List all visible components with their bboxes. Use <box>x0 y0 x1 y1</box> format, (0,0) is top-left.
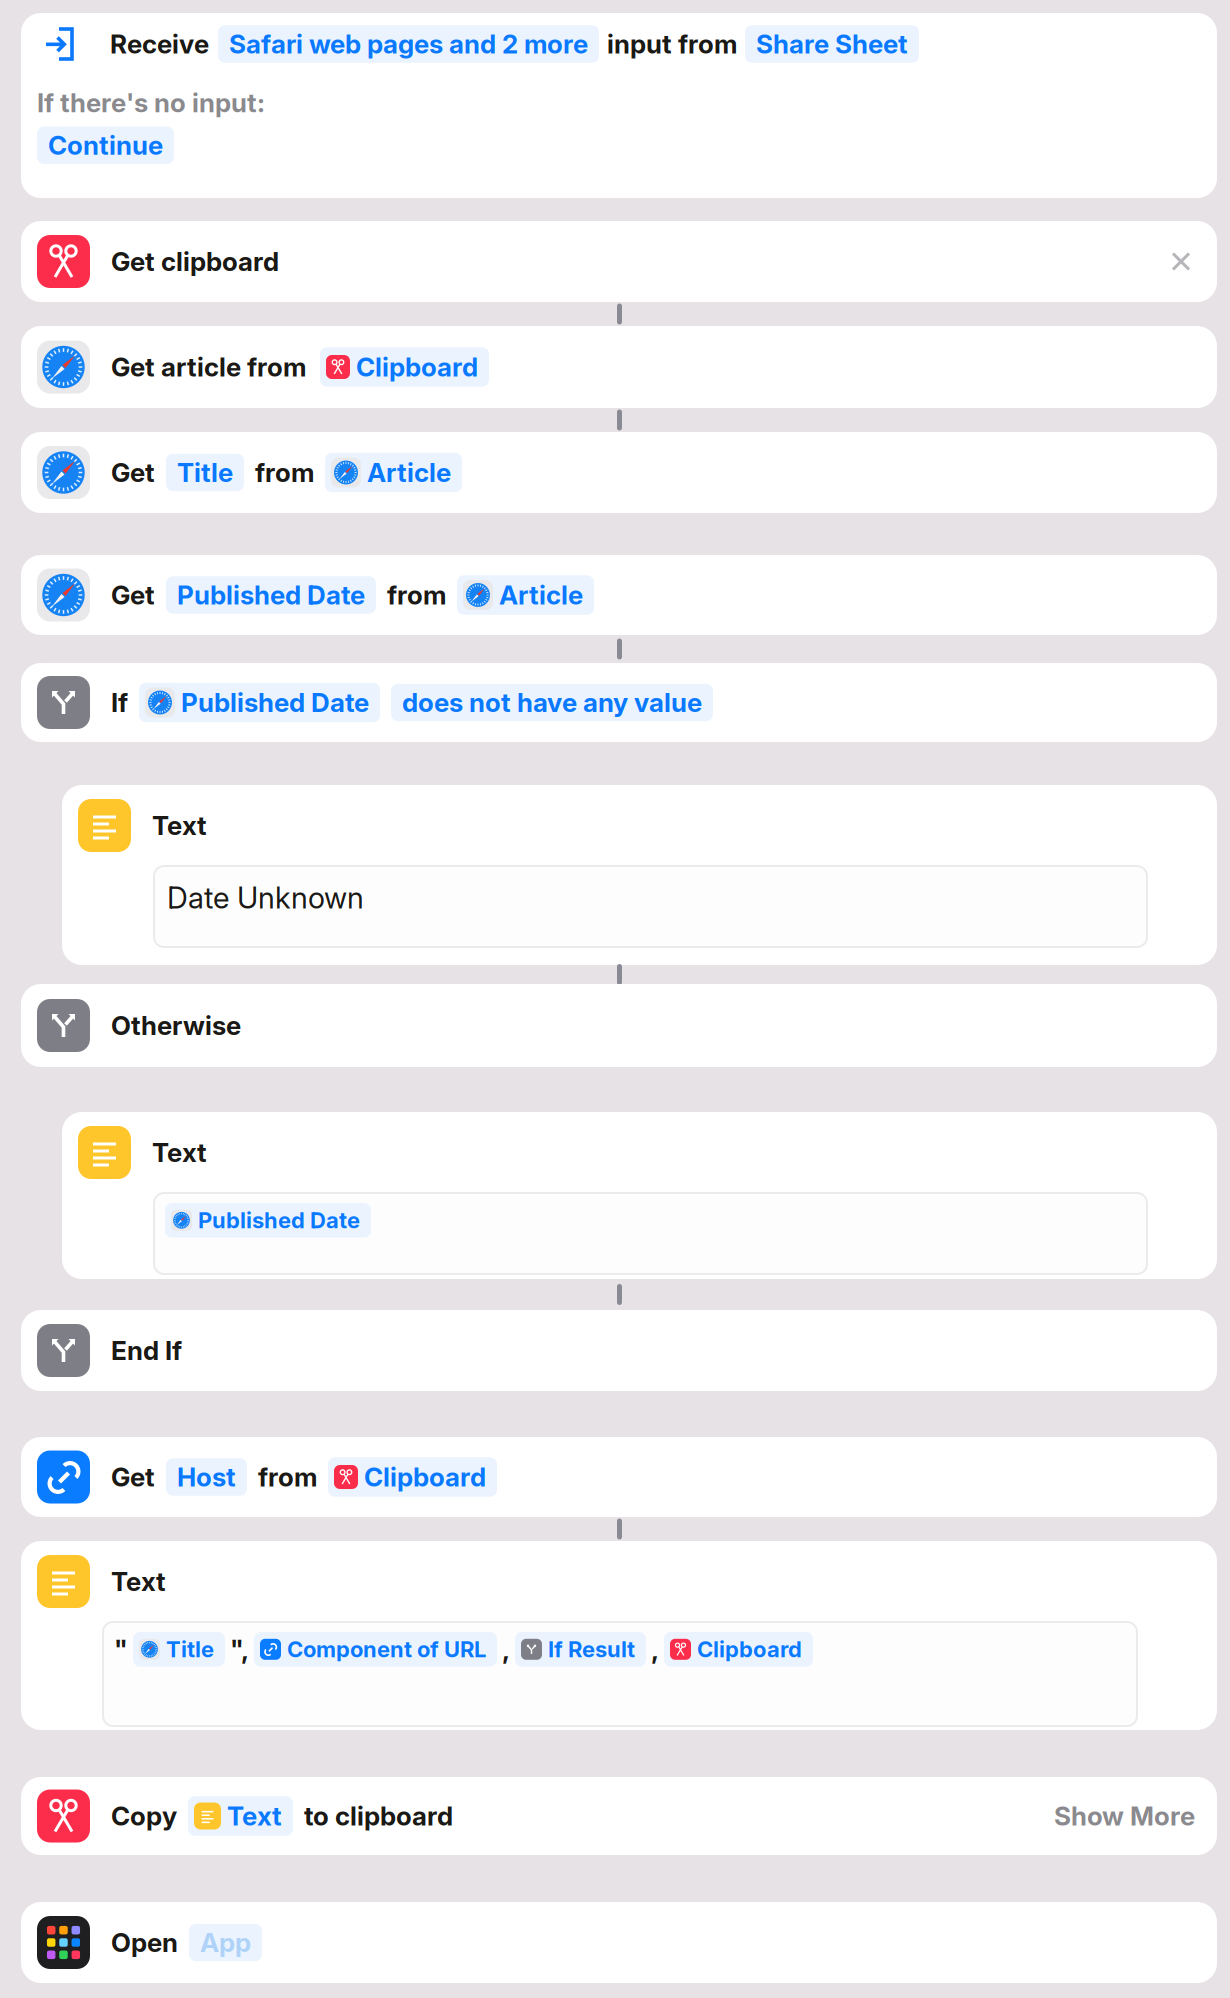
staticText: Date Unknown <box>167 880 364 915</box>
staticText: Text <box>227 1800 282 1832</box>
staticText: , <box>502 1634 510 1665</box>
staticText: Title <box>166 1636 214 1663</box>
staticText: If <box>111 687 128 718</box>
button[interactable]: Text <box>62 785 1217 965</box>
staticText: from <box>258 1461 317 1493</box>
button[interactable]: Otherwise <box>21 984 1217 1067</box>
staticText: Title <box>177 457 233 488</box>
button[interactable]: Receive <box>21 13 1217 198</box>
button[interactable]: Copy <box>21 1777 1217 1855</box>
button[interactable]: Text <box>62 1112 1217 1279</box>
button[interactable]: Get <box>21 432 1217 513</box>
staticText: Clipboard <box>364 1461 486 1493</box>
staticText: does not have any value <box>402 687 702 718</box>
staticText: Published Date <box>177 579 365 611</box>
staticText: Otherwise <box>111 1010 241 1041</box>
staticText: Open <box>111 1927 178 1958</box>
staticText: Article <box>499 579 583 611</box>
button[interactable]: Get <box>21 555 1217 635</box>
staticText: Published Date <box>181 687 369 718</box>
staticText: Get article from <box>111 351 306 383</box>
button[interactable]: Remove action <box>1171 251 1191 271</box>
button[interactable]: Get <box>21 1437 1217 1517</box>
staticText: ", <box>230 1634 249 1665</box>
staticText: Show More <box>1054 1800 1195 1832</box>
staticText: from <box>255 457 314 488</box>
staticText: App <box>200 1927 251 1958</box>
staticText: Get clipboard <box>111 246 279 277</box>
staticText: to clipboard <box>304 1800 453 1832</box>
staticText: Safari web pages and 2 more <box>229 28 588 60</box>
button[interactable]: Open <box>21 1902 1217 1983</box>
staticText: Share Sheet <box>756 28 908 60</box>
button[interactable]: If <box>21 663 1217 742</box>
staticText: Clipboard <box>356 351 478 383</box>
staticText: Text <box>152 1137 207 1168</box>
staticText: input from <box>607 28 737 60</box>
staticText: " <box>114 1634 128 1665</box>
staticText: If Result <box>548 1636 635 1663</box>
staticText: Text <box>111 1566 166 1597</box>
button[interactable]: Text <box>21 1541 1217 1730</box>
staticText: End If <box>111 1335 182 1366</box>
staticText: , <box>651 1634 659 1665</box>
staticText: If there's no input: <box>37 87 265 118</box>
button[interactable]: Get article from <box>21 326 1217 408</box>
staticText: Text <box>152 810 207 841</box>
staticText: Copy <box>111 1800 177 1832</box>
staticText: Receive <box>110 28 209 60</box>
staticText: Get <box>111 457 155 488</box>
staticText: Published Date <box>198 1207 360 1234</box>
staticText: Component of URL <box>287 1636 486 1663</box>
staticText: Continue <box>48 129 163 161</box>
staticText: from <box>387 579 446 611</box>
button[interactable]: End If <box>21 1310 1217 1391</box>
staticText: Clipboard <box>697 1636 802 1663</box>
staticText: Host <box>177 1461 236 1493</box>
staticText: Get <box>111 579 155 611</box>
staticText: Article <box>367 457 451 488</box>
button[interactable]: Get clipboard <box>21 221 1217 302</box>
staticText: Get <box>111 1461 155 1493</box>
